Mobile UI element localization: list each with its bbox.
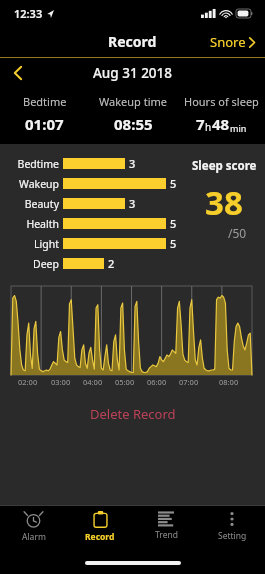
staticText: Bedtime — [17, 157, 59, 171]
staticText: 08:55 — [114, 114, 153, 134]
staticText: Light — [34, 237, 59, 251]
staticText: 12:33 — [14, 6, 43, 21]
button[interactable]: Snore — [200, 27, 265, 57]
staticText: Trend — [155, 529, 178, 541]
staticText: 3 — [129, 156, 136, 171]
staticText: 48 — [212, 114, 230, 134]
staticText: 03:00 — [51, 377, 71, 387]
staticText: Delete Record — [90, 405, 176, 423]
staticText: 38 — [205, 180, 243, 225]
staticText: Wakeup — [19, 177, 59, 191]
staticText: 5 — [170, 176, 177, 191]
button[interactable]: Delete Record — [0, 400, 265, 428]
staticText: Alarm — [22, 531, 46, 543]
staticText: 02:00 — [18, 377, 38, 387]
staticText: Record — [85, 531, 115, 543]
staticText: Aug 31 2018 — [93, 64, 173, 82]
staticText: 01:07 — [25, 114, 64, 134]
button[interactable]: Alarm — [0, 506, 67, 552]
staticText: 07:00 — [179, 377, 199, 387]
staticText: Snore — [210, 33, 246, 51]
staticText: Record — [108, 32, 157, 51]
staticText: 04:00 — [83, 377, 103, 387]
staticText: h — [205, 120, 212, 134]
staticText: /50 — [228, 225, 247, 241]
staticText: 2 — [108, 256, 115, 271]
staticText: Beauty — [24, 197, 59, 211]
button[interactable]: Record — [67, 506, 133, 552]
button[interactable]: Setting — [199, 506, 265, 552]
staticText: 7 — [196, 114, 205, 134]
staticText: Wakeup time — [99, 94, 167, 109]
staticText: Setting — [218, 530, 247, 542]
button[interactable]: Back — [0, 60, 36, 86]
staticText: 5 — [170, 236, 177, 251]
staticText: 06:00 — [147, 377, 167, 387]
staticText: Bedtime — [23, 94, 67, 109]
staticText: 08:00 — [219, 377, 239, 387]
staticText: Deep — [33, 257, 59, 271]
button[interactable]: Trend — [133, 506, 199, 552]
staticText: Hours of sleep — [184, 94, 259, 109]
staticText: min — [230, 122, 247, 134]
staticText: 5 — [170, 216, 177, 231]
staticText: Sleep score — [192, 158, 257, 174]
staticText: 05:00 — [115, 377, 135, 387]
staticText: Health — [26, 217, 59, 231]
staticText: 3 — [129, 196, 136, 211]
